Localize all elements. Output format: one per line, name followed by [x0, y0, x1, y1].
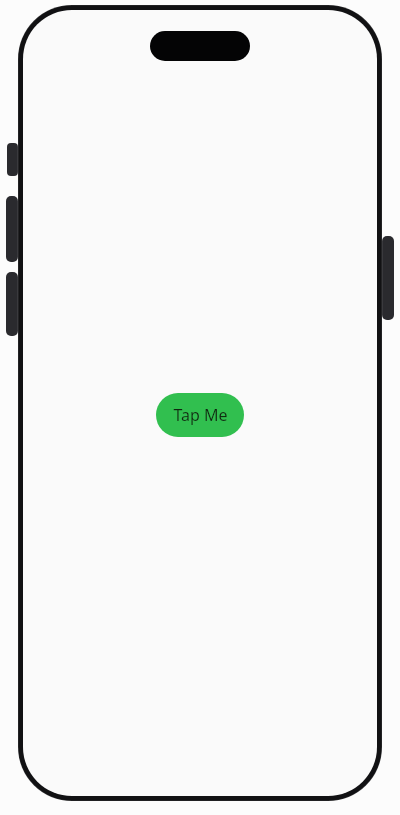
other: Dynamic Island [150, 31, 250, 61]
button[interactable]: Tap Me [156, 393, 244, 437]
staticText: Tap Me [173, 404, 228, 426]
